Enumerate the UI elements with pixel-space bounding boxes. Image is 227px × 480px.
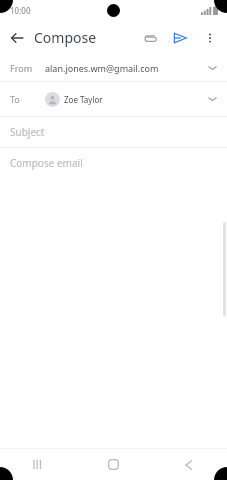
button[interactable]: To <box>0 82 227 116</box>
staticText: To <box>10 93 20 105</box>
button[interactable]: Back <box>151 449 227 480</box>
button[interactable]: Subject <box>0 117 227 147</box>
button[interactable]: Send <box>165 23 195 53</box>
button[interactable]: Recent apps <box>0 449 75 480</box>
button[interactable]: More options <box>195 23 225 53</box>
staticText: alan.jones.wm@gmail.com <box>45 62 159 74</box>
staticText: Subject <box>10 125 45 139</box>
staticText: Zoe Taylor <box>64 94 103 105</box>
staticText: From <box>10 62 33 74</box>
button[interactable]: Zoe Taylor <box>44 91 110 108</box>
button[interactable]: Home <box>75 449 151 480</box>
staticText: Compose <box>34 28 97 47</box>
button[interactable]: Attach file <box>135 23 165 53</box>
staticText: Compose email <box>10 156 83 170</box>
button[interactable]: Compose email <box>0 148 227 178</box>
button[interactable]: From <box>0 55 227 81</box>
button[interactable]: Back <box>0 21 34 55</box>
staticText: 10:00 <box>10 5 31 16</box>
